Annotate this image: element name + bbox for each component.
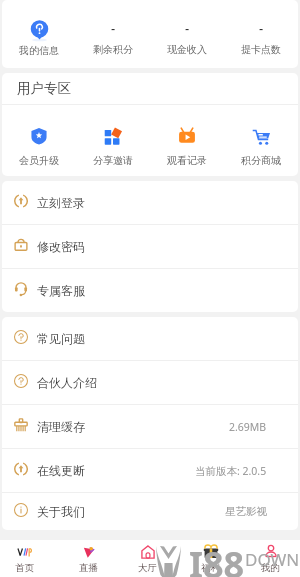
staticText: 在线更断 [37, 463, 85, 478]
button[interactable]: 首页 [0, 540, 53, 577]
button[interactable]: 会员升级 [2, 105, 76, 176]
staticText: - [111, 19, 116, 37]
staticText: 剩余积分 [93, 43, 133, 56]
staticText: 常见问题 [37, 331, 85, 346]
staticText: 专属客服 [37, 283, 85, 298]
button[interactable]: 积分商城 [224, 105, 298, 176]
staticText: 清理缓存 [37, 419, 85, 434]
button[interactable]: 直播 [59, 540, 117, 577]
staticText: 分享邀请 [93, 154, 133, 167]
staticText: DOWN [245, 548, 300, 571]
button[interactable]: 合伙人介绍 [2, 361, 298, 404]
button[interactable]: 我的信息 [2, 0, 76, 68]
button[interactable]: 清理缓存 [2, 405, 298, 448]
staticText: 首页 [15, 562, 34, 574]
button[interactable]: 常见问题 [2, 317, 298, 360]
staticText: 用户专区 [17, 80, 71, 97]
staticText: I88 [189, 540, 245, 577]
staticText: 关于我们 [37, 504, 85, 519]
staticText: 我的 [261, 562, 280, 574]
staticText: 观看记录 [167, 154, 207, 167]
button[interactable]: - [76, 0, 150, 68]
staticText: - [259, 19, 264, 37]
button[interactable]: 大厅 [118, 540, 176, 577]
staticText: 2.69MB [229, 420, 267, 434]
staticText: 立刻登录 [37, 195, 85, 210]
button[interactable]: 在线更断 [2, 449, 298, 492]
staticText: 大厅 [138, 562, 157, 574]
button[interactable]: 观看记录 [150, 105, 224, 176]
staticText: 现金收入 [167, 43, 207, 56]
staticText: - [185, 19, 190, 37]
staticText: 合伙人介绍 [37, 375, 97, 390]
staticText: 直播 [79, 562, 98, 574]
button[interactable]: - [224, 0, 298, 68]
staticText: 提卡点数 [241, 43, 281, 56]
staticText: 福利 [201, 562, 220, 574]
button[interactable]: 我的 [241, 540, 299, 577]
button[interactable]: 分享邀请 [76, 105, 150, 176]
button[interactable]: 修改密码 [2, 225, 298, 268]
staticText: 当前版本: 2.0.5 [195, 464, 267, 478]
button[interactable]: 专属客服 [2, 269, 298, 312]
staticText: 修改密码 [37, 239, 85, 254]
staticText: 我的信息 [19, 44, 59, 57]
staticText: 积分商城 [241, 154, 281, 167]
staticText: 会员升级 [19, 154, 59, 167]
button[interactable]: 立刻登录 [2, 181, 298, 224]
button[interactable]: 福利 [181, 540, 239, 577]
button[interactable]: - [150, 0, 224, 68]
button[interactable]: 关于我们 [2, 493, 298, 530]
staticText: 星艺影视 [225, 505, 267, 518]
